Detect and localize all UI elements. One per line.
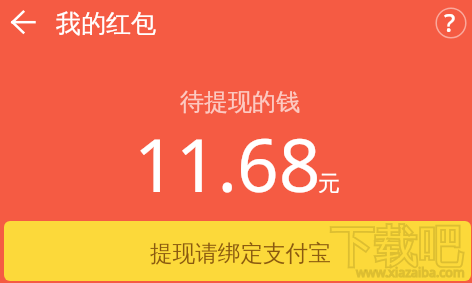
- staticText: ?: [444, 5, 456, 39]
- staticText: 提现请绑定支付宝: [150, 239, 331, 267]
- button[interactable]: 提现请绑定支付宝: [4, 221, 471, 281]
- staticText: 待提现的钱: [180, 87, 300, 117]
- staticText: www.xiazaiba.com: [356, 264, 465, 281]
- staticText: 我的红包: [56, 8, 156, 39]
- button[interactable]: Help: [431, 3, 471, 43]
- staticText: 下载吧: [330, 221, 462, 275]
- button[interactable]: Back: [2, 2, 44, 44]
- staticText: 11.68: [134, 114, 321, 213]
- staticText: 元: [318, 170, 340, 198]
